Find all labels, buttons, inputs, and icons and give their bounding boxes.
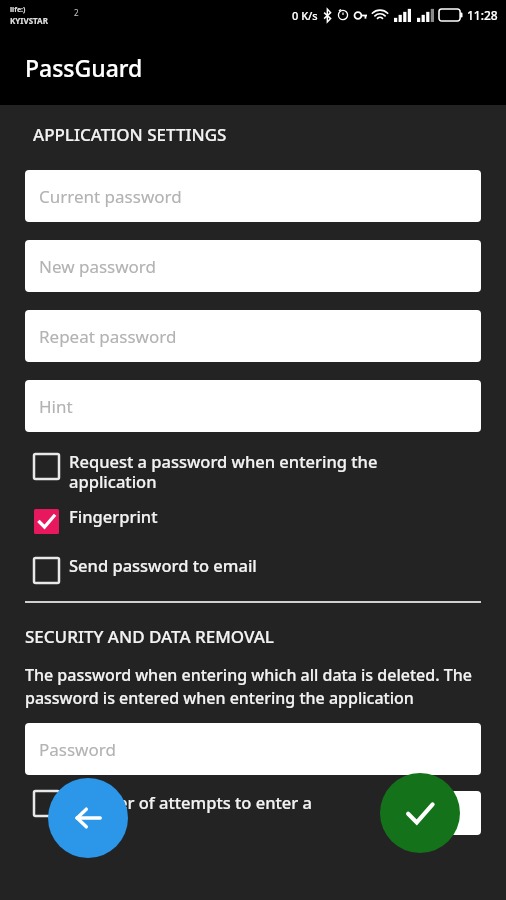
button[interactable]: New password: [25, 240, 481, 292]
staticText: Number of attempts to enter a: [69, 791, 405, 813]
staticText: APPLICATION SETTINGS: [33, 123, 227, 146]
button[interactable]: Current password: [25, 170, 481, 222]
button[interactable]: Back: [48, 778, 128, 858]
button[interactable]: Save: [380, 773, 460, 853]
staticText: 11:28: [467, 7, 498, 23]
staticText: Request a password when entering the app…: [69, 450, 457, 493]
staticText: life:): [10, 5, 26, 15]
staticText: Hint: [39, 395, 73, 418]
staticText: Password: [39, 738, 116, 761]
button[interactable]: Hint: [25, 380, 481, 432]
staticText: Fingerprint: [69, 505, 158, 527]
button[interactable]: Request a password when entering the app…: [25, 446, 481, 497]
staticText: SECURITY AND DATA REMOVAL: [25, 625, 274, 648]
button[interactable]: Repeat password: [25, 310, 481, 362]
staticText: The password when entering which all dat…: [25, 664, 481, 709]
staticText: Repeat password: [39, 325, 177, 348]
staticText: PassGuard: [25, 52, 143, 83]
button[interactable]: Password: [25, 723, 481, 775]
staticText: Send password to email: [69, 554, 257, 576]
staticText: Current password: [39, 185, 182, 208]
button[interactable]: [405, 791, 481, 835]
staticText: New password: [39, 255, 157, 278]
staticText: 0 K/s: [292, 8, 318, 23]
button[interactable]: Fingerprint: [25, 501, 481, 538]
staticText: KYIVSTAR: [10, 15, 48, 26]
button[interactable]: Number of attempts to enter a: [25, 791, 481, 835]
button[interactable]: Send password to email: [25, 550, 481, 587]
staticText: 2: [74, 7, 79, 18]
